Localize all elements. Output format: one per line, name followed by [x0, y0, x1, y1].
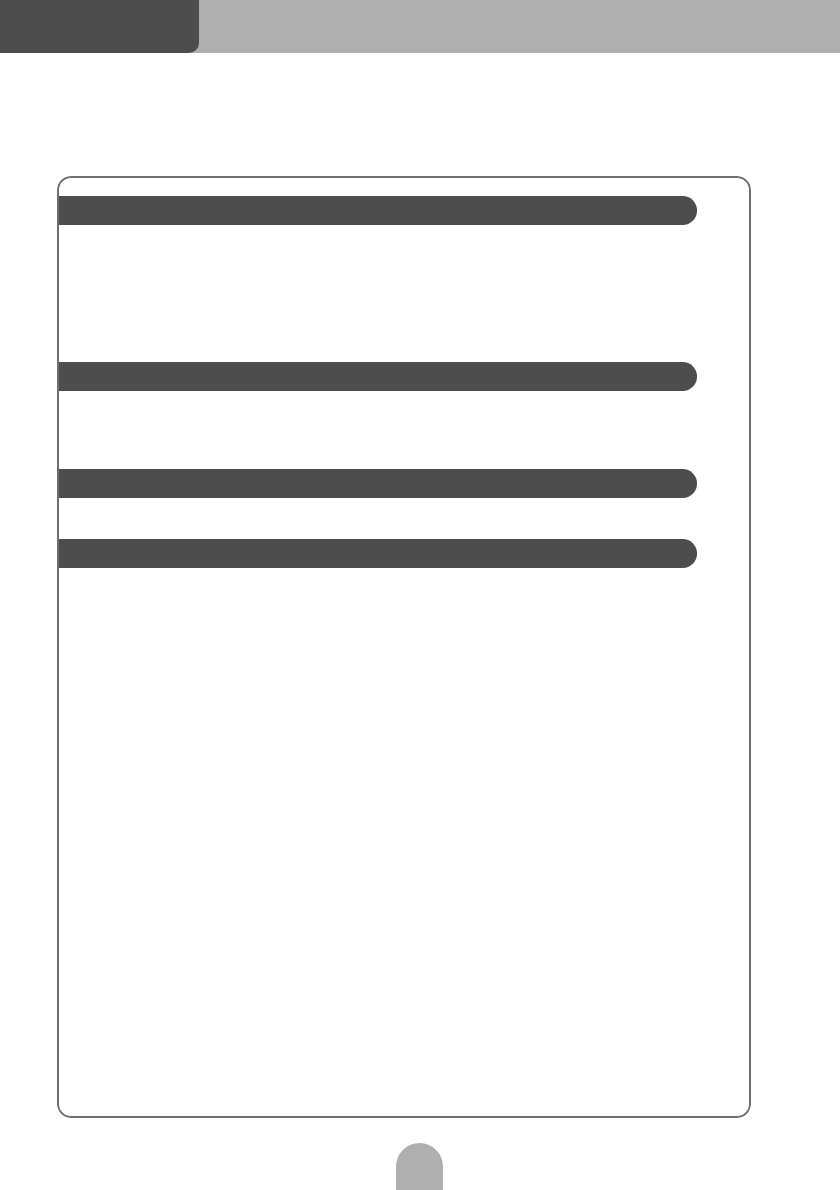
- button[interactable]: List item: [58, 469, 697, 498]
- button[interactable]: List item: [58, 362, 697, 391]
- button[interactable]: Menu: [0, 0, 199, 53]
- button[interactable]: List item: [58, 539, 697, 568]
- button[interactable]: List item: [58, 196, 697, 225]
- button[interactable]: Home: [396, 1143, 443, 1190]
